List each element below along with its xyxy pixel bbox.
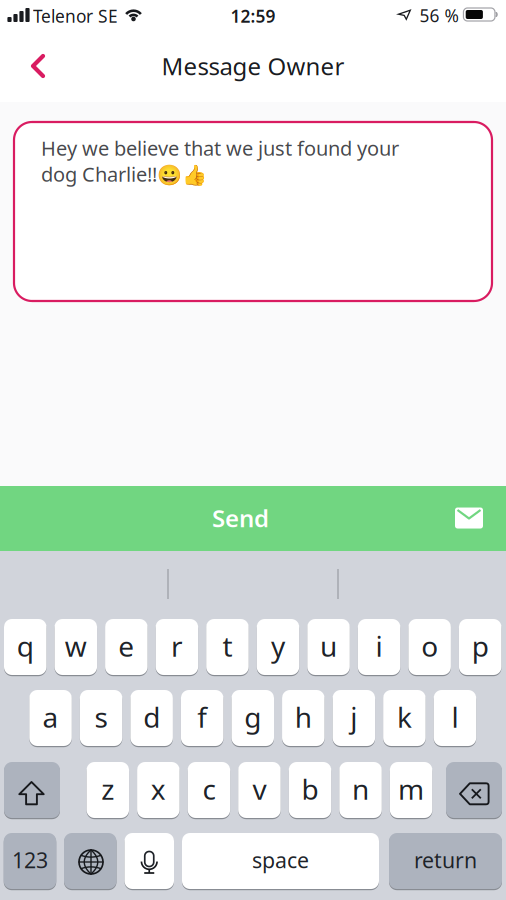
button[interactable]: Send: [0, 486, 506, 551]
button[interactable]: Back: [16, 44, 60, 88]
button[interactable]: r: [156, 618, 198, 676]
button[interactable]: e: [105, 618, 148, 676]
button[interactable]: j: [333, 689, 375, 747]
button[interactable]: o: [408, 618, 451, 676]
button[interactable]: h: [282, 689, 325, 747]
button[interactable]: space: [182, 832, 379, 890]
button[interactable]: b: [289, 761, 331, 819]
staticText: v: [252, 770, 266, 808]
staticText: x: [151, 770, 166, 808]
button[interactable]: i: [358, 618, 400, 676]
staticText: w: [65, 627, 87, 665]
staticText: y: [271, 627, 285, 665]
staticText: Send: [212, 502, 269, 534]
staticText: o: [421, 627, 438, 665]
staticText: l: [451, 698, 458, 736]
button[interactable]: w: [54, 618, 97, 676]
button[interactable]: 123: [4, 832, 56, 890]
button[interactable]: y: [257, 618, 299, 676]
button[interactable]: g: [231, 689, 274, 747]
staticText: q: [17, 627, 34, 665]
button[interactable]: t: [206, 618, 249, 676]
button[interactable]: x: [137, 761, 180, 819]
staticText: z: [101, 770, 114, 808]
staticText: Telenor SE: [33, 4, 118, 27]
button[interactable]: return: [389, 832, 502, 890]
staticText: dog Charlie!!😀👍: [41, 161, 207, 187]
staticText: p: [472, 627, 489, 665]
staticText: j: [350, 698, 357, 736]
staticText: h: [295, 698, 312, 736]
button[interactable]: m: [390, 761, 432, 819]
button[interactable]: Dictate: [124, 832, 174, 890]
button[interactable]: l: [434, 689, 476, 747]
staticText: b: [301, 770, 318, 808]
button[interactable]: Next keyboard: [64, 832, 116, 890]
staticText: Message Owner: [161, 50, 344, 82]
staticText: space: [252, 846, 309, 874]
button[interactable]: c: [188, 761, 230, 819]
staticText: f: [197, 698, 207, 736]
button[interactable]: Delete: [446, 761, 502, 819]
staticText: u: [320, 627, 337, 665]
staticText: g: [244, 698, 261, 736]
staticText: t: [222, 627, 232, 665]
staticText: 12:59: [230, 4, 275, 27]
staticText: s: [95, 698, 108, 736]
staticText: k: [397, 698, 412, 736]
button[interactable]: k: [383, 689, 426, 747]
staticText: m: [398, 770, 424, 808]
button[interactable]: a: [29, 689, 72, 747]
button[interactable]: s: [80, 689, 122, 747]
button[interactable]: Shift: [4, 761, 60, 819]
button[interactable]: f: [181, 689, 223, 747]
button[interactable]: p: [459, 618, 501, 676]
staticText: return: [414, 846, 477, 874]
staticText: d: [143, 698, 160, 736]
button[interactable]: v: [238, 761, 281, 819]
staticText: 123: [12, 846, 48, 874]
button[interactable]: z: [86, 761, 129, 819]
button[interactable]: q: [4, 618, 46, 676]
staticText: c: [202, 770, 215, 808]
button[interactable]: d: [130, 689, 173, 747]
staticText: Hey we believe that we just found your: [41, 135, 399, 161]
button[interactable]: n: [339, 761, 382, 819]
staticText: a: [42, 698, 58, 736]
staticText: 56 %: [419, 4, 458, 27]
button[interactable]: u: [307, 618, 350, 676]
staticText: i: [376, 627, 383, 665]
staticText: r: [171, 627, 183, 665]
staticText: n: [352, 770, 369, 808]
staticText: e: [118, 627, 134, 665]
